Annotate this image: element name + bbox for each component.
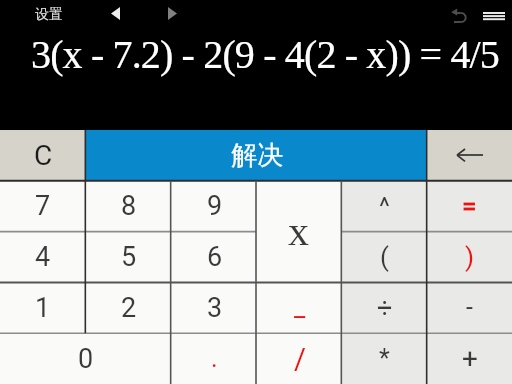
staticText: 0 xyxy=(78,343,94,375)
button[interactable] xyxy=(446,2,474,30)
staticText: 3(x - 7.2) - 2(9 - 4(2 - x)) = 4/5 xyxy=(31,32,499,76)
staticText: 7 xyxy=(35,190,51,222)
staticText: _ xyxy=(294,293,306,322)
button[interactable]: 3 xyxy=(172,282,257,333)
staticText: - xyxy=(466,293,473,322)
button[interactable]: ) xyxy=(427,231,512,282)
staticText: 6 xyxy=(207,241,223,273)
button[interactable]: 解决 xyxy=(86,130,427,180)
button[interactable] xyxy=(100,0,128,28)
staticText: 8 xyxy=(121,190,137,222)
button[interactable]: 4 xyxy=(0,231,86,282)
button[interactable]: / xyxy=(257,333,342,384)
staticText: ÷ xyxy=(377,292,393,324)
button[interactable] xyxy=(257,180,342,231)
button[interactable]: 2 xyxy=(86,282,172,333)
button[interactable] xyxy=(479,6,509,26)
staticText: 2 xyxy=(121,292,137,324)
button[interactable]: 9 xyxy=(172,180,257,231)
staticText: 4 xyxy=(35,241,51,273)
button[interactable]: ( xyxy=(342,231,427,282)
staticText: 9 xyxy=(207,190,223,222)
staticText: 5 xyxy=(121,241,137,273)
staticText: * xyxy=(379,344,390,373)
button[interactable] xyxy=(427,130,512,180)
button[interactable]: 0 xyxy=(0,333,172,384)
button[interactable] xyxy=(158,0,186,28)
button[interactable]: + xyxy=(427,333,512,384)
staticText: C xyxy=(34,139,53,172)
staticText: 1 xyxy=(35,292,51,324)
staticText: + xyxy=(462,342,478,375)
button[interactable]: 5 xyxy=(86,231,172,282)
staticText: = xyxy=(462,191,477,221)
button[interactable]: 7 xyxy=(0,180,86,231)
staticText: / xyxy=(294,342,306,376)
button[interactable]: = xyxy=(427,180,512,231)
button[interactable]: * xyxy=(342,333,427,384)
staticText: ^ xyxy=(379,191,390,221)
button[interactable]: _ xyxy=(257,282,342,333)
staticText: . xyxy=(211,344,218,373)
staticText: ) xyxy=(465,242,475,272)
button[interactable]: ÷ xyxy=(342,282,427,333)
staticText: x xyxy=(288,208,309,255)
staticText: ( xyxy=(380,242,389,272)
button[interactable]: ^ xyxy=(342,180,427,231)
button[interactable] xyxy=(257,231,342,282)
button[interactable]: - xyxy=(427,282,512,333)
button[interactable]: 6 xyxy=(172,231,257,282)
staticText: 设置 xyxy=(35,6,63,24)
staticText: 3 xyxy=(207,292,223,324)
button[interactable]: . xyxy=(172,333,257,384)
button[interactable]: 1 xyxy=(0,282,86,333)
button[interactable]: 8 xyxy=(86,180,172,231)
button[interactable]: 设置 xyxy=(35,6,63,24)
button[interactable]: C xyxy=(0,130,86,180)
staticText: 解决 xyxy=(231,139,283,172)
